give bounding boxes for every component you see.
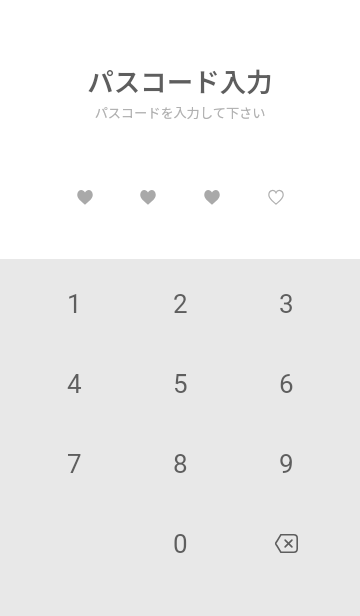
button[interactable]: 5 — [127, 344, 233, 424]
button[interactable]: 2 — [127, 264, 233, 344]
staticText: 2 — [173, 289, 188, 319]
staticText: 0 — [173, 529, 188, 559]
button[interactable]: 3 — [233, 264, 339, 344]
button[interactable]: 0 — [127, 504, 233, 584]
button[interactable]: 7 — [21, 424, 127, 504]
button[interactable]: 4 — [21, 344, 127, 424]
staticText: パスコード入力 — [87, 61, 273, 99]
staticText: パスコードを入力して下さい — [94, 103, 266, 122]
staticText: 7 — [67, 449, 82, 479]
staticText: 8 — [173, 449, 188, 479]
button[interactable]: 9 — [233, 424, 339, 504]
staticText: 5 — [173, 369, 188, 399]
staticText: 9 — [279, 449, 294, 479]
button[interactable]: 8 — [127, 424, 233, 504]
button[interactable]: Delete — [233, 503, 339, 583]
staticText: 1 — [67, 289, 82, 319]
button[interactable]: 1 — [21, 264, 127, 344]
staticText: 4 — [67, 369, 82, 399]
staticText: 6 — [279, 369, 294, 399]
button[interactable]: 6 — [233, 344, 339, 424]
staticText: 3 — [279, 289, 294, 319]
